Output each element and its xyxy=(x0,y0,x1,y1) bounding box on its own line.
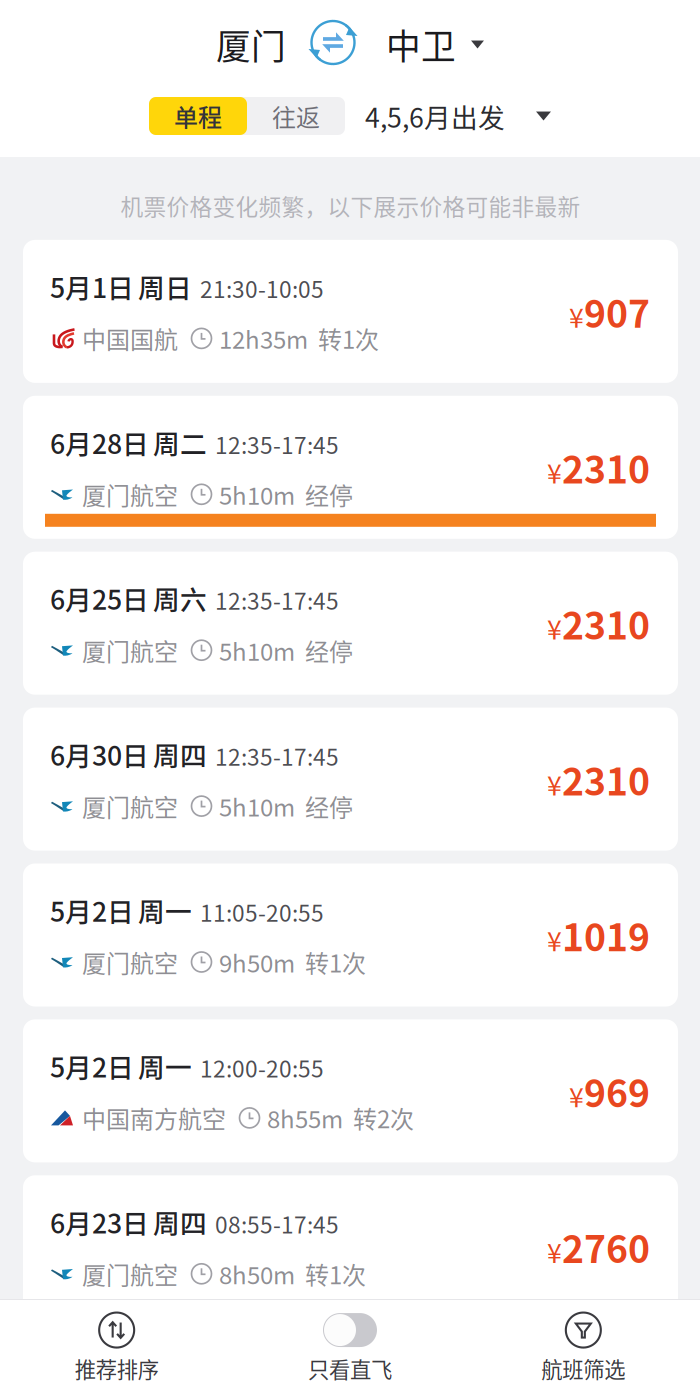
staticText: 5h10m xyxy=(219,633,295,668)
staticText: ¥ xyxy=(547,920,562,959)
button[interactable]: 6月30日 xyxy=(23,708,678,851)
staticText: ¥ xyxy=(547,453,562,491)
staticText: 08:55-17:45 xyxy=(215,1207,339,1240)
staticText: 中国国航 xyxy=(82,321,178,356)
staticText: 6月28日 xyxy=(50,423,149,462)
staticText: 21:30-10:05 xyxy=(200,272,324,304)
button[interactable]: 4,5,6月出发 xyxy=(365,94,551,138)
staticText: 周四 xyxy=(153,735,207,773)
staticText: 12:35-17:45 xyxy=(215,739,339,772)
staticText: 2310 xyxy=(562,440,650,494)
staticText: 4,5,6月出发 xyxy=(365,97,505,135)
staticText: 907 xyxy=(584,284,650,338)
staticText: 经停 xyxy=(305,633,353,668)
staticText: 9h50m xyxy=(219,945,295,979)
button[interactable]: 只看直飞 xyxy=(233,1310,467,1384)
staticText: 969 xyxy=(584,1064,650,1118)
staticText: 厦门航空 xyxy=(82,633,178,668)
button[interactable]: 中卫 xyxy=(386,24,484,64)
staticText: 1019 xyxy=(562,908,650,962)
staticText: 单程 xyxy=(174,99,222,133)
staticText: 8h50m xyxy=(219,1256,295,1291)
staticText: 厦门 xyxy=(216,19,286,70)
staticText: 经停 xyxy=(305,477,353,512)
button[interactable]: 6月23日 xyxy=(23,1175,678,1318)
staticText: 6月23日 xyxy=(50,1202,149,1241)
staticText: ¥ xyxy=(547,764,562,803)
button[interactable]: 5月1日 xyxy=(23,240,678,383)
staticText: ¥ xyxy=(547,1232,562,1271)
button[interactable]: 厦门 xyxy=(216,24,286,64)
staticText: 推荐排序 xyxy=(75,1353,159,1384)
staticText: 5月1日 xyxy=(50,267,134,306)
staticText: 5月2日 xyxy=(50,891,134,929)
staticText: 厦门航空 xyxy=(82,789,178,823)
button[interactable]: 交换出发地和目的地 xyxy=(306,15,364,73)
staticText: 周六 xyxy=(153,579,207,617)
staticText: ¥ xyxy=(569,297,584,335)
staticText: 只看直飞 xyxy=(308,1353,392,1384)
staticText: 6月25日 xyxy=(50,579,149,617)
staticText: 转1次 xyxy=(305,1256,366,1291)
staticText: 12:00-20:55 xyxy=(200,1051,324,1084)
staticText: 8h55m xyxy=(267,1100,343,1135)
staticText: 5h10m xyxy=(219,477,295,512)
staticText: 2310 xyxy=(562,596,650,650)
staticText: ¥ xyxy=(547,608,562,647)
staticText: 12:35-17:45 xyxy=(215,428,339,460)
staticText: 中卫 xyxy=(386,19,456,70)
staticText: 周四 xyxy=(153,1202,207,1241)
staticText: 经停 xyxy=(305,789,353,823)
staticText: 航班筛选 xyxy=(541,1353,625,1384)
staticText: 转1次 xyxy=(318,321,379,356)
staticText: 2760 xyxy=(562,1220,650,1274)
staticText: 5月2日 xyxy=(50,1047,134,1085)
button[interactable]: 航班筛选 xyxy=(467,1310,700,1384)
staticText: 周一 xyxy=(138,1047,192,1085)
button[interactable]: 往返 xyxy=(247,97,345,135)
staticText: 2310 xyxy=(562,752,650,806)
staticText: ¥ xyxy=(569,1076,584,1115)
staticText: 11:05-20:55 xyxy=(200,895,324,928)
staticText: 机票价格变化频繁，以下展示价格可能非最新 xyxy=(120,189,580,222)
staticText: 周日 xyxy=(138,267,192,306)
staticText: 5h10m xyxy=(219,789,295,823)
button[interactable]: 6月25日 xyxy=(23,552,678,695)
staticText: 往返 xyxy=(272,99,320,133)
staticText: 12h35m xyxy=(219,321,308,356)
button[interactable]: 6月28日 xyxy=(23,396,678,539)
staticText: 厦门航空 xyxy=(82,945,178,979)
button[interactable]: 5月2日 xyxy=(23,1019,678,1162)
staticText: 中国南方航空 xyxy=(82,1100,226,1135)
button[interactable]: 推荐排序 xyxy=(0,1310,233,1384)
button[interactable]: 5月2日 xyxy=(23,863,678,1006)
staticText: 12:35-17:45 xyxy=(215,583,339,616)
button[interactable]: 单程 xyxy=(149,97,247,135)
staticText: 周二 xyxy=(153,423,207,462)
staticText: 6月30日 xyxy=(50,735,149,773)
staticText: 周一 xyxy=(138,891,192,929)
staticText: 转2次 xyxy=(353,1100,414,1135)
staticText: 厦门航空 xyxy=(82,1256,178,1291)
staticText: 厦门航空 xyxy=(82,477,178,512)
staticText: 转1次 xyxy=(305,945,366,979)
